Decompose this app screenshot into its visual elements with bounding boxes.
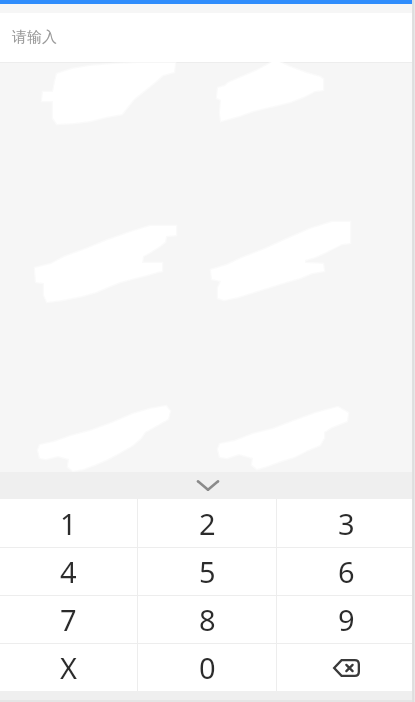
button[interactable]: Delete [277,644,415,691]
staticText: 3 [338,504,355,543]
button[interactable]: 9 [277,596,415,643]
staticText: 7 [60,600,77,639]
button[interactable]: X [0,644,137,691]
button[interactable]: 6 [277,548,415,595]
button[interactable]: 4 [0,548,137,595]
button[interactable]: 1 [0,499,137,547]
button[interactable]: 0 [138,644,276,691]
button[interactable]: Hide keyboard [185,472,231,499]
button[interactable]: 3 [277,499,415,547]
staticText: 4 [60,552,77,591]
staticText: X [60,648,77,687]
button[interactable]: 5 [138,548,276,595]
button[interactable]: 7 [0,596,137,643]
staticText: 0 [199,648,216,687]
staticText: 1 [60,504,77,543]
staticText: 请输入 [12,28,57,47]
button[interactable]: 请输入 [0,13,415,62]
staticText: 5 [199,552,216,591]
staticText: 9 [338,600,355,639]
button[interactable]: 8 [138,596,276,643]
staticText: 6 [338,552,355,591]
button[interactable]: 2 [138,499,276,547]
staticText: 2 [199,504,216,543]
staticText: 8 [199,600,216,639]
other: Delete [277,644,415,691]
